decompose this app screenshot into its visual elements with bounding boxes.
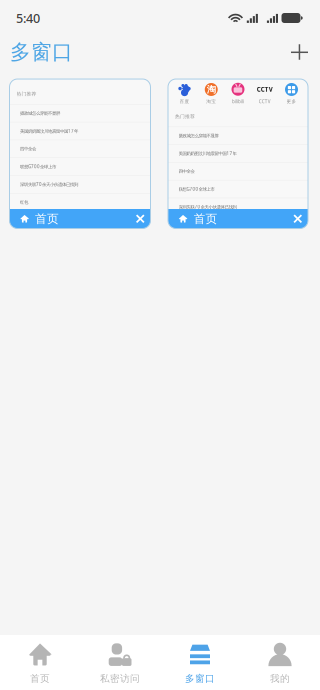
staticText: 四中全会 <box>178 168 194 174</box>
staticText: 更多 <box>286 98 296 104</box>
staticText: 联想G700全球上市 <box>178 186 214 192</box>
button[interactable]: 私密访问 <box>80 633 160 690</box>
staticText: 四中全会 <box>20 146 36 151</box>
staticText: 美国奶奶图汶川地震留中国17年 <box>178 150 236 156</box>
staticText: 我的 <box>270 672 290 685</box>
button[interactable]: 多窗口 <box>160 633 240 690</box>
staticText: 摄政城怎么穿能不显胖 <box>178 133 218 138</box>
staticText: bilibili <box>232 98 244 104</box>
staticText: CCTV <box>259 98 271 104</box>
staticText: 深圳失联70余天小伙遗体已找到 <box>178 204 236 210</box>
button[interactable]: 淘 <box>201 83 222 104</box>
staticText: 红包 <box>20 199 28 205</box>
button[interactable]: 首页 <box>0 633 80 690</box>
staticText: 淘 <box>207 84 216 95</box>
button[interactable]: New window <box>285 37 314 67</box>
button[interactable]: 更多 <box>281 83 302 104</box>
staticText: 联想G700全球上市 <box>20 164 56 170</box>
button[interactable]: 百度 <box>174 83 195 104</box>
staticText: 红包 <box>178 222 186 227</box>
staticText: 热门推荐 <box>16 91 36 97</box>
staticText: 摄政城怎么穿能不显胖 <box>20 110 60 116</box>
staticText: 首页 <box>35 211 59 226</box>
staticText: 首页 <box>30 672 50 685</box>
button[interactable]: CCTV <box>254 82 275 104</box>
staticText: 5:40 <box>16 9 40 27</box>
staticText: 首页 <box>193 211 217 226</box>
staticText: 热门推荐 <box>175 113 195 119</box>
staticText: 百度 <box>179 98 189 104</box>
staticText: 多窗口 <box>10 39 73 65</box>
button[interactable]: Close window <box>287 209 308 228</box>
button[interactable]: 我的 <box>240 633 320 690</box>
staticText: CCTV <box>257 85 273 93</box>
staticText: 私密访问 <box>100 672 140 685</box>
staticText: 美国奶奶图汶川地震留中国17年 <box>20 128 78 134</box>
button[interactable]: Close window <box>130 209 150 228</box>
staticText: 深圳失联70余天小伙遗体已找到 <box>20 181 78 187</box>
button[interactable]: bilibili <box>227 82 248 104</box>
staticText: 多窗口 <box>185 672 215 685</box>
staticText: 淘宝 <box>206 98 216 104</box>
